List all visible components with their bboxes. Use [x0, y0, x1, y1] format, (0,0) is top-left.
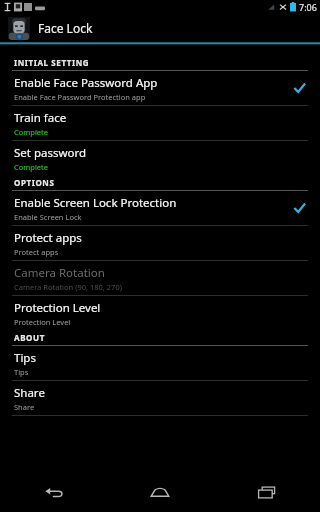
staticText: Protect apps [14, 247, 59, 257]
staticText: ABOUT [14, 332, 45, 343]
staticText: Protect apps [14, 230, 82, 246]
staticText: OPTIONS [14, 177, 55, 188]
staticText: Set password [14, 145, 87, 161]
button[interactable]: Face Lock [0, 14, 320, 42]
staticText: Complete [14, 162, 49, 172]
button[interactable]: Enable Face Password App [0, 71, 320, 105]
button[interactable]: Protection Level [0, 296, 320, 330]
staticText: Enable Face Password Protection app [14, 92, 146, 102]
button[interactable]: Protect apps [0, 226, 320, 260]
staticText: Train face [14, 110, 67, 126]
button[interactable]: Back [0, 472, 106, 512]
staticText: Enable Screen Lock Protection [14, 195, 177, 211]
button[interactable]: Enable Screen Lock Protection [0, 191, 320, 225]
staticText: Face Lock [38, 20, 93, 36]
staticText: Share [14, 402, 35, 412]
button[interactable]: Train face [0, 106, 320, 140]
staticText: Complete [14, 127, 49, 137]
button[interactable]: Recent apps [213, 472, 320, 512]
button[interactable]: Home [106, 472, 213, 512]
button[interactable]: Share [0, 381, 320, 415]
button[interactable]: Tips [0, 346, 320, 380]
staticText: Protection Level [14, 317, 71, 327]
button[interactable]: Toggle setting [290, 199, 308, 217]
staticText: Share [14, 385, 45, 401]
staticText: Enable Screen Lock [14, 212, 82, 222]
staticText: INITIAL SETTING [14, 57, 90, 68]
button[interactable]: Toggle setting [290, 79, 308, 97]
staticText: Protection Level [14, 300, 101, 316]
staticText: Tips [14, 350, 36, 366]
staticText: Camera Rotation (90, 180, 270) [14, 282, 122, 292]
button[interactable]: Set password [0, 141, 320, 175]
staticText: Enable Face Password App [14, 75, 158, 91]
staticText: 7:06 [299, 1, 317, 13]
staticText: Camera Rotation [14, 265, 105, 281]
staticText: Tips [14, 367, 29, 377]
